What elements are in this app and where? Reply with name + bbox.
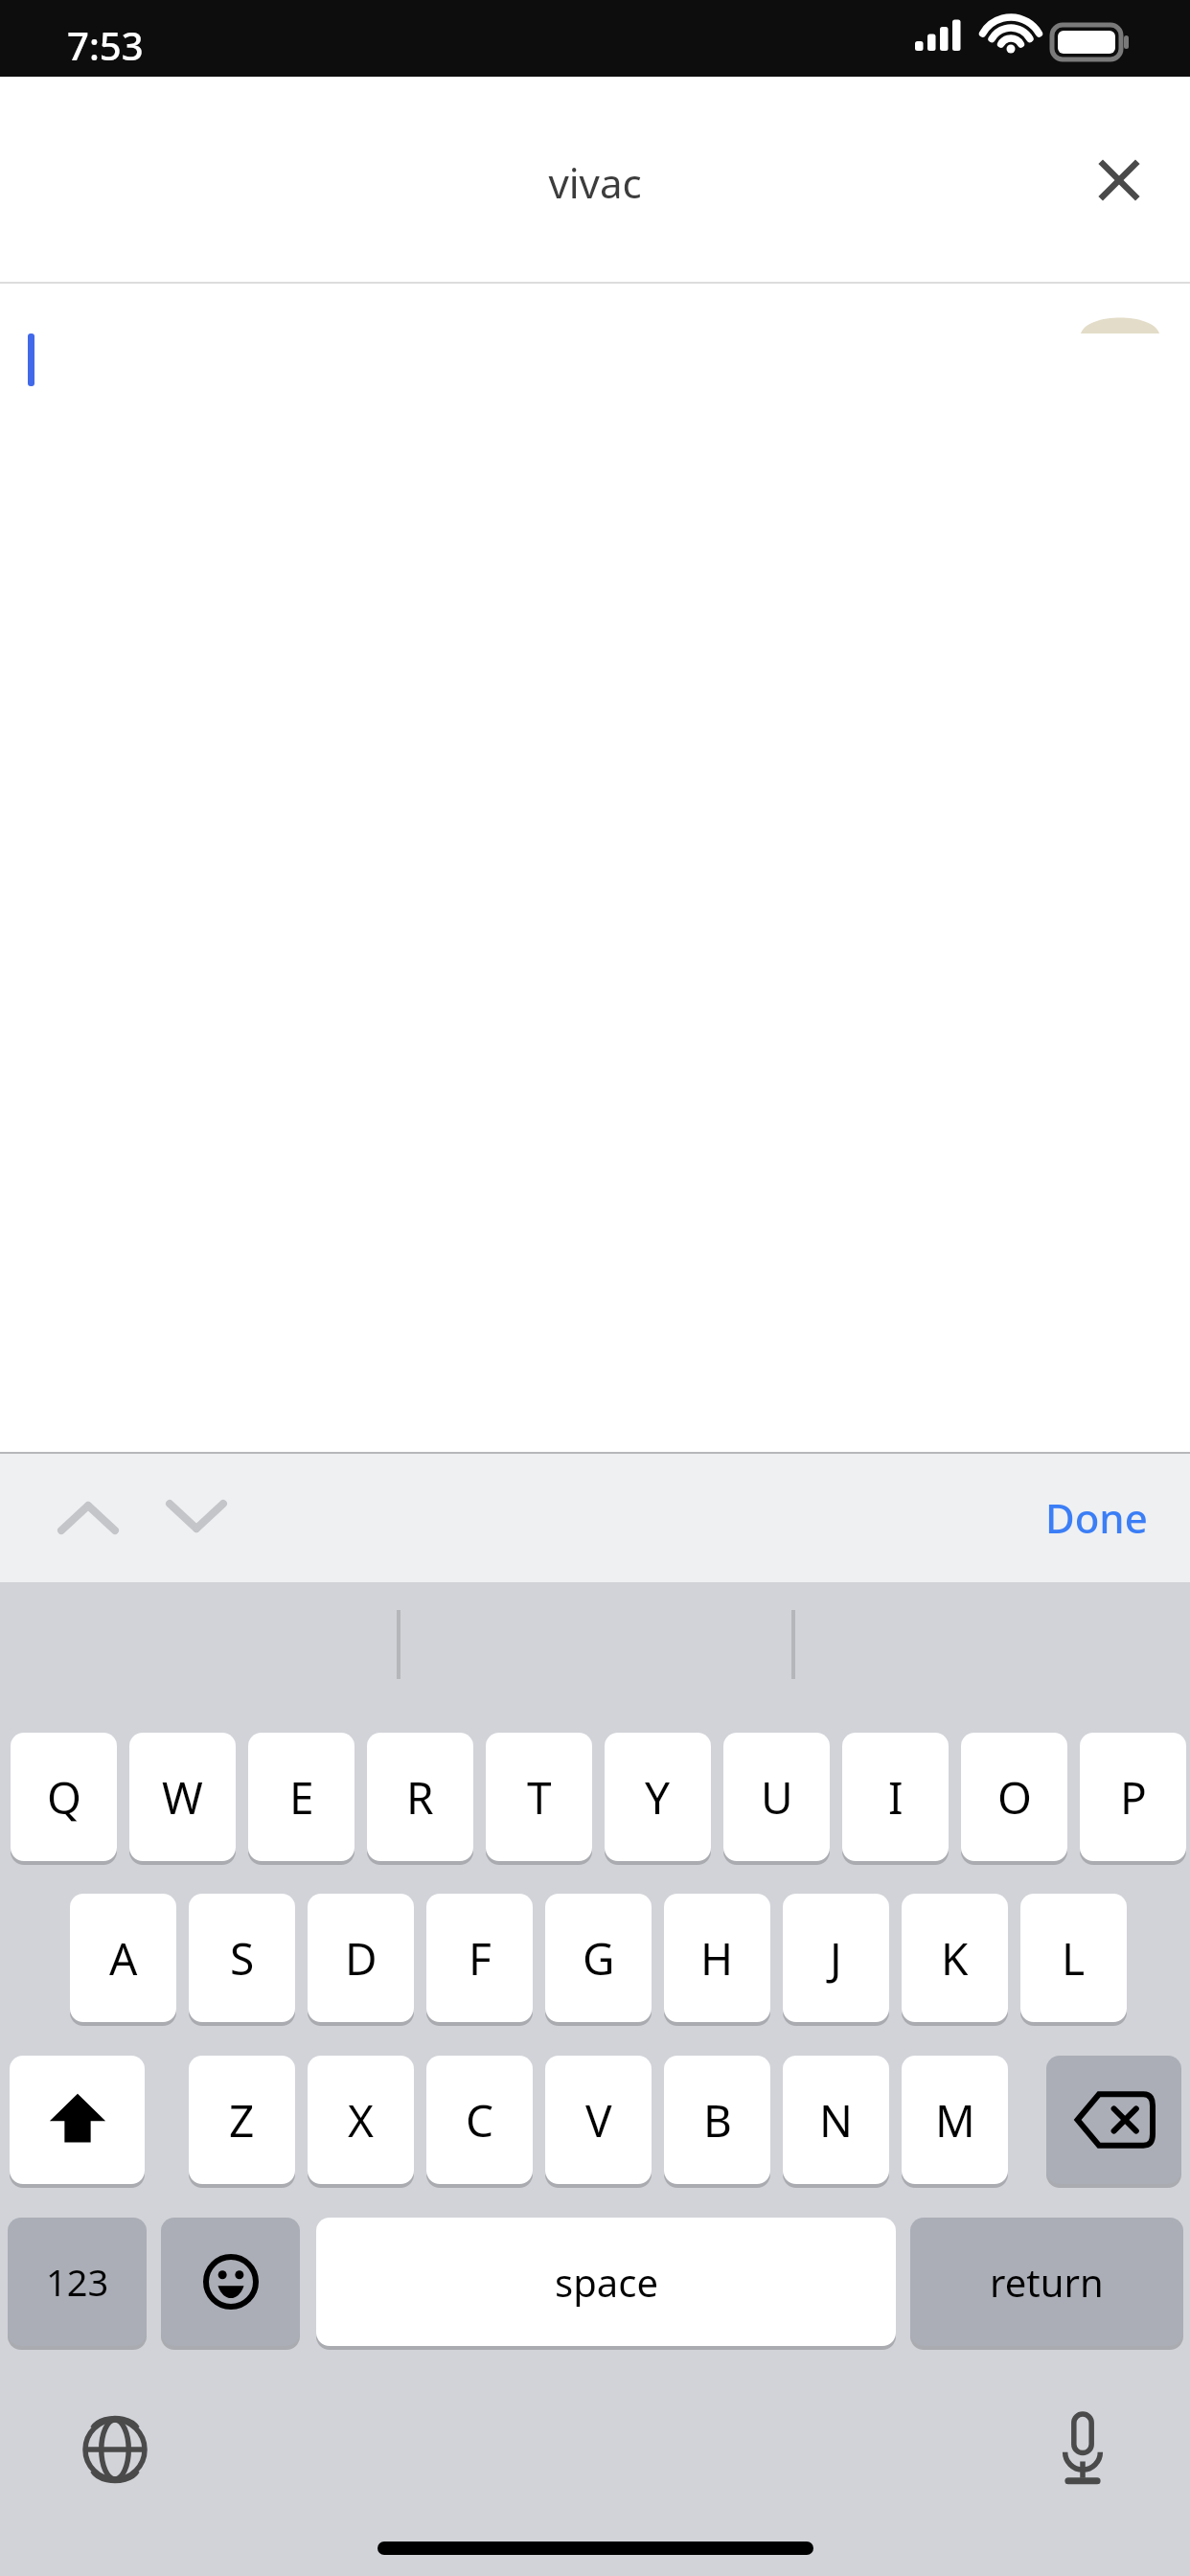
button[interactable]: Backspace [1046, 2056, 1181, 2184]
staticText: A [109, 1928, 138, 1989]
button[interactable]: H [664, 1894, 770, 2022]
staticText: D [345, 1928, 378, 1989]
button[interactable]: E [248, 1733, 355, 1861]
staticText: R [406, 1767, 434, 1828]
staticText: 7:53 [67, 19, 144, 71]
button[interactable]: Change keyboard [38, 2392, 192, 2507]
staticText: B [703, 2090, 732, 2150]
staticText: U [761, 1767, 793, 1828]
button[interactable]: I [842, 1733, 949, 1861]
button[interactable]: return [910, 2218, 1183, 2346]
staticText: K [941, 1928, 969, 1989]
staticText: space [555, 2256, 658, 2308]
staticText: H [700, 1928, 734, 1989]
staticText: V [585, 2090, 612, 2150]
button[interactable]: X [308, 2056, 414, 2184]
button[interactable]: O [961, 1733, 1067, 1861]
staticText: T [527, 1767, 552, 1828]
button[interactable]: D [308, 1894, 414, 2022]
staticText: C [466, 2090, 494, 2150]
button[interactable]: Next field [149, 1481, 244, 1553]
button[interactable]: B [664, 2056, 770, 2184]
staticText: G [583, 1928, 615, 1989]
button[interactable]: T [486, 1733, 592, 1861]
button[interactable]: Emoji [161, 2218, 300, 2346]
staticText: M [935, 2090, 975, 2150]
staticText: Q [47, 1767, 81, 1828]
button[interactable]: Z [189, 2056, 295, 2184]
button[interactable]: W [129, 1733, 236, 1861]
button[interactable]: Done [1045, 1490, 1148, 1545]
button[interactable]: 123 [8, 2218, 147, 2346]
button[interactable]: Shift [10, 2056, 145, 2184]
button[interactable]: Close [1073, 134, 1165, 226]
button[interactable]: A [70, 1894, 176, 2022]
button[interactable]: P [1080, 1733, 1186, 1861]
staticText: Z [229, 2090, 255, 2150]
button[interactable]: L [1020, 1894, 1127, 2022]
button[interactable]: N [783, 2056, 889, 2184]
staticText: vivac [548, 155, 642, 210]
button[interactable]: space [316, 2218, 896, 2346]
staticText: E [289, 1767, 314, 1828]
staticText: Y [645, 1767, 671, 1828]
button[interactable]: U [723, 1733, 830, 1861]
button[interactable]: F [426, 1894, 533, 2022]
button[interactable]: J [783, 1894, 889, 2022]
staticText: 123 [46, 2257, 109, 2307]
button[interactable]: Dictate [1006, 2392, 1159, 2507]
button[interactable]: G [545, 1894, 652, 2022]
button[interactable]: Y [605, 1733, 711, 1861]
staticText: W [162, 1767, 203, 1828]
button[interactable]: Previous field [40, 1481, 136, 1553]
staticText: I [888, 1767, 904, 1828]
button[interactable]: K [902, 1894, 1008, 2022]
staticText: X [348, 2090, 374, 2150]
button[interactable]: C [426, 2056, 533, 2184]
staticText: O [997, 1767, 1032, 1828]
staticText: F [469, 1928, 492, 1989]
staticText: return [990, 2256, 1104, 2308]
staticText: N [819, 2090, 853, 2150]
button[interactable]: S [189, 1894, 295, 2022]
button[interactable]: R [367, 1733, 473, 1861]
staticText: S [230, 1928, 255, 1989]
button[interactable]: M [902, 2056, 1008, 2184]
staticText: J [830, 1928, 842, 1989]
staticText: P [1120, 1767, 1147, 1828]
button[interactable]: V [545, 2056, 652, 2184]
staticText: Done [1045, 1490, 1148, 1545]
button[interactable]: Q [11, 1733, 117, 1861]
staticText: L [1062, 1928, 1086, 1989]
